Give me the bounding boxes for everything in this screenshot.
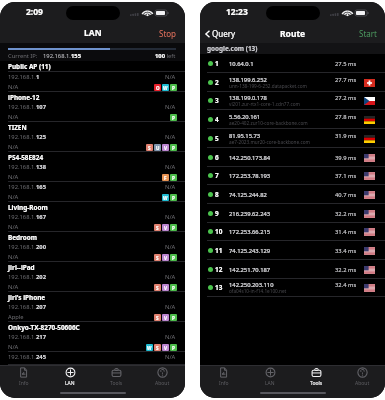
staticText: 245 <box>36 353 46 361</box>
button[interactable]: 3 <box>200 91 385 110</box>
staticText: U <box>156 145 160 151</box>
staticText: About <box>355 380 370 387</box>
staticText: S <box>156 315 159 321</box>
button[interactable]: Tools <box>93 366 139 387</box>
staticText: 192.168.1. <box>8 333 36 341</box>
staticText: Tools <box>310 380 323 387</box>
staticText: PS4-58E824 <box>8 153 44 162</box>
button[interactable]: 6 <box>200 148 385 167</box>
staticText: 172.253.66.215 <box>229 228 271 236</box>
button[interactable]: Info <box>200 366 247 387</box>
staticText: Route <box>280 28 306 40</box>
staticText: V <box>164 145 167 151</box>
staticText: V <box>164 255 167 261</box>
button[interactable]: 5 <box>200 129 385 148</box>
staticText: 10 <box>215 227 223 236</box>
staticText: S <box>156 225 159 231</box>
staticText: S <box>156 285 159 291</box>
button[interactable]: 13 <box>200 278 385 297</box>
button[interactable]: 11 <box>200 241 385 260</box>
button[interactable]: 192.168.1. <box>0 182 185 202</box>
staticText: N/A <box>165 353 176 361</box>
button[interactable]: 7 <box>200 166 385 185</box>
button[interactable]: TIZEN <box>0 122 185 152</box>
button[interactable]: Onkyo-TX-8270-50606C <box>0 322 185 352</box>
staticText: O <box>156 85 160 91</box>
staticText: 81.95.15.73 <box>229 132 261 140</box>
button[interactable]: LAN <box>247 366 293 387</box>
button[interactable]: 192.168.1. <box>0 72 185 92</box>
button[interactable]: Living-Room <box>0 202 185 232</box>
staticText: N/A <box>165 273 176 281</box>
staticText: 37.1 ms <box>335 172 357 180</box>
staticText: 31.9 ms <box>335 132 357 140</box>
button[interactable]: About <box>139 366 185 387</box>
staticText: 8 <box>215 190 219 199</box>
staticText: P <box>172 115 175 121</box>
button[interactable]: Bedroom <box>0 232 185 262</box>
button[interactable]: About <box>339 366 385 387</box>
staticText: W <box>163 85 168 91</box>
staticText: 192.168.1. <box>8 273 36 281</box>
staticText: ae20-402.zur10-core-backbone.com <box>229 120 308 126</box>
button[interactable]: Tools <box>293 366 339 387</box>
staticText: N/A <box>165 163 176 171</box>
staticText: N/A <box>165 103 176 111</box>
staticText: 5 <box>215 134 219 143</box>
staticText: 138.199.0.178 <box>229 94 267 102</box>
staticText: 202 <box>36 273 46 281</box>
staticText: 12:23 <box>226 6 248 18</box>
staticText: 4 <box>215 115 219 124</box>
staticText: 192.168.1. <box>8 133 36 141</box>
staticText: 32.2 ms <box>335 266 357 274</box>
staticText: N/A <box>165 243 176 251</box>
staticText: V <box>164 285 167 291</box>
staticText: 6 <box>215 153 219 162</box>
staticText: Current IP: <box>8 52 38 60</box>
staticText: Info <box>19 380 29 387</box>
button[interactable]: Jiri's iPhone <box>0 292 185 322</box>
staticText: P <box>172 195 175 201</box>
button[interactable]: Jiri--iPad <box>0 262 185 292</box>
staticText: unn-138-199-6-252.datapacket.com <box>229 83 307 89</box>
staticText: TIZEN <box>8 123 27 132</box>
button[interactable]: 10 <box>200 222 385 241</box>
staticText: Living-Room <box>8 203 48 212</box>
button[interactable]: Public AP (11) <box>0 61 185 72</box>
staticText: 167 <box>36 213 46 221</box>
button[interactable]: Stop <box>151 25 185 42</box>
button[interactable]: Query <box>200 25 242 42</box>
button[interactable]: 192.168.1. <box>0 352 185 365</box>
button[interactable]: 2 <box>200 73 385 92</box>
button[interactable]: 8 <box>200 185 385 204</box>
button[interactable]: Start <box>351 25 385 42</box>
staticText: V <box>164 345 167 351</box>
button[interactable]: 4 <box>200 110 385 129</box>
staticText: 216.239.62.243 <box>229 210 271 218</box>
staticText: 39.9 ms <box>335 154 357 162</box>
button[interactable]: PS4-58E824 <box>0 152 185 182</box>
button[interactable]: 1 <box>200 54 385 73</box>
staticText: N/A <box>8 193 19 201</box>
staticText: 40.7 ms <box>335 191 357 199</box>
button[interactable]: iPhone-12 <box>0 92 185 122</box>
button[interactable]: LAN <box>47 366 93 387</box>
staticText: V <box>164 225 167 231</box>
staticText: 192.168.1. <box>8 73 36 81</box>
staticText: 10.64.0.1 <box>229 60 254 68</box>
staticText: N/A <box>8 83 19 91</box>
staticText: 192.168.1. <box>8 213 36 221</box>
staticText: N/A <box>165 333 176 341</box>
staticText: N/A <box>165 183 176 191</box>
staticText: 138.199.6.252 <box>229 76 267 84</box>
staticText: 3 <box>215 96 219 105</box>
staticText: 32.2 ms <box>335 210 357 218</box>
staticText: P <box>172 225 175 231</box>
staticText: 155 <box>71 52 81 60</box>
button[interactable]: Info <box>0 366 47 387</box>
staticText: P <box>172 345 175 351</box>
button[interactable]: 9 <box>200 204 385 223</box>
staticText: left <box>165 52 176 60</box>
staticText: P <box>172 175 175 181</box>
button[interactable]: 12 <box>200 260 385 279</box>
